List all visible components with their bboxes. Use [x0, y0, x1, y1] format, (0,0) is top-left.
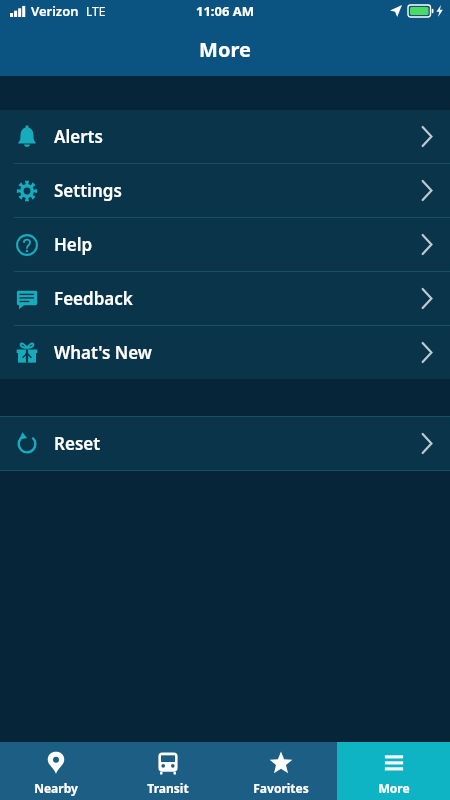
- staticText: LTE: [86, 3, 106, 19]
- staticText: What's New: [54, 341, 152, 364]
- staticText: 11:06 AM: [196, 2, 255, 20]
- button[interactable]: What's New: [0, 326, 450, 379]
- staticText: Transit: [147, 780, 189, 796]
- staticText: Nearby: [34, 780, 78, 796]
- staticText: Alerts: [54, 125, 103, 148]
- staticText: Feedback: [54, 287, 133, 310]
- staticText: Verizon: [31, 2, 79, 20]
- staticText: More: [378, 780, 410, 796]
- staticText: More: [199, 36, 251, 63]
- staticText: Favorites: [253, 780, 309, 796]
- button[interactable]: Reset: [0, 417, 450, 470]
- button[interactable]: More: [337, 742, 450, 800]
- button[interactable]: Transit: [112, 742, 224, 800]
- button[interactable]: Favorites: [224, 742, 337, 800]
- button[interactable]: Alerts: [0, 110, 450, 163]
- button[interactable]: Help: [0, 218, 450, 271]
- button[interactable]: Settings: [0, 164, 450, 217]
- button[interactable]: Feedback: [0, 272, 450, 325]
- staticText: Help: [54, 233, 93, 256]
- staticText: Reset: [54, 432, 101, 455]
- button[interactable]: Nearby: [0, 742, 112, 800]
- staticText: Settings: [54, 179, 122, 202]
